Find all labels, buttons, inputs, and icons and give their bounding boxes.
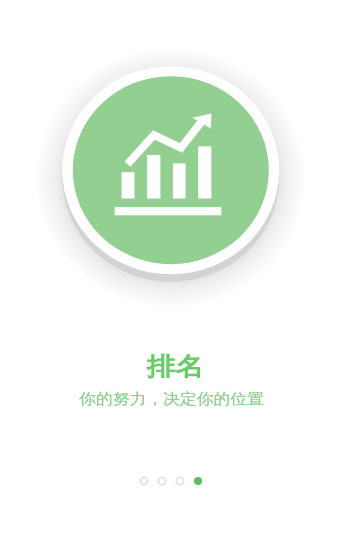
button[interactable]: Page 3 bbox=[171, 472, 189, 490]
button[interactable]: Page 2 bbox=[153, 472, 171, 490]
button[interactable]: Page 1 bbox=[135, 472, 153, 490]
staticText: 排名 bbox=[146, 351, 203, 382]
staticText: 你的努力，决定你的位置 bbox=[79, 390, 264, 409]
button[interactable]: Page 4 bbox=[189, 472, 207, 490]
